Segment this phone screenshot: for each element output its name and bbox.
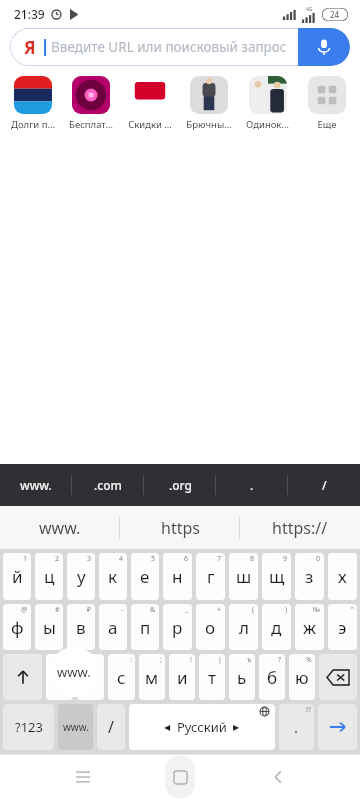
staticText: 2 <box>55 554 60 564</box>
button[interactable]: я <box>46 654 73 700</box>
button[interactable]: . <box>279 704 314 750</box>
button[interactable]: ш <box>229 553 258 600</box>
button[interactable]: б <box>259 654 285 700</box>
button[interactable]: Брючны… <box>179 74 238 133</box>
staticText: https:// <box>272 517 328 539</box>
staticText: Я <box>24 36 36 59</box>
button[interactable]: www. <box>0 464 72 506</box>
button[interactable]: и <box>169 654 195 700</box>
staticText: : <box>130 655 132 665</box>
button[interactable]: й <box>3 553 31 600</box>
button[interactable]: Back <box>254 754 302 800</box>
button[interactable]: ф <box>3 604 31 650</box>
staticText: / <box>108 716 114 738</box>
button[interactable]: Одинок… <box>238 74 297 133</box>
button[interactable]: Я <box>10 28 350 66</box>
staticText: 3 <box>87 554 92 564</box>
button[interactable]: Go <box>318 704 357 750</box>
button[interactable]: ж <box>295 604 324 650</box>
button[interactable]: п <box>131 604 159 650</box>
button[interactable]: Backspace <box>319 654 357 700</box>
button[interactable]: н <box>163 553 192 600</box>
button[interactable]: х <box>328 553 357 600</box>
button[interactable]: Voice search <box>298 28 350 66</box>
staticText: ₽ <box>87 605 92 615</box>
button[interactable]: щ <box>262 553 291 600</box>
button[interactable]: к <box>99 553 127 600</box>
staticText: л <box>239 616 249 639</box>
staticText: . <box>294 717 299 737</box>
button[interactable]: www. <box>0 506 120 549</box>
staticText: № <box>313 605 321 615</box>
button[interactable]: Shift <box>3 654 42 700</box>
button[interactable]: в <box>67 604 95 650</box>
staticText: ъ <box>247 655 252 665</box>
button[interactable]: Home <box>165 755 195 799</box>
button[interactable]: г <box>196 553 225 600</box>
button[interactable]: Еще <box>297 74 356 133</box>
staticText: в <box>76 616 86 639</box>
button[interactable]: ?123 <box>3 704 54 750</box>
staticText: ю <box>295 666 309 689</box>
staticText: е <box>140 565 150 588</box>
staticText: ы <box>43 616 56 639</box>
staticText: ц <box>44 565 55 588</box>
staticText: д <box>271 616 282 639</box>
staticText: www. <box>63 720 89 734</box>
staticText: .org <box>169 477 192 493</box>
other: Go <box>328 717 348 737</box>
staticText: ? <box>278 655 282 665</box>
button[interactable]: у <box>67 553 95 600</box>
staticText: @ <box>21 605 28 615</box>
staticText: !? <box>306 705 311 715</box>
button[interactable]: Recents <box>59 754 107 800</box>
button[interactable]: е <box>131 553 159 600</box>
staticText: б <box>267 666 278 689</box>
button[interactable]: ц <box>35 553 63 600</box>
button[interactable]: . <box>216 464 288 506</box>
button[interactable]: ю <box>289 654 315 700</box>
button[interactable]: д <box>262 604 291 650</box>
button[interactable]: Скидки … <box>120 74 179 133</box>
staticText: + <box>217 605 222 615</box>
staticText: ?123 <box>15 718 43 736</box>
button[interactable]: / <box>288 464 360 506</box>
button[interactable]: з <box>295 553 324 600</box>
staticText: ж <box>303 616 316 639</box>
button[interactable]: ы <box>35 604 63 650</box>
button[interactable]: а <box>99 604 127 650</box>
staticText: Долги п… <box>11 118 55 131</box>
staticText: щ <box>269 565 285 588</box>
staticText: з <box>305 565 314 588</box>
button[interactable]: Долги п… <box>4 74 62 133</box>
button[interactable]: ь <box>229 654 255 700</box>
staticText: я <box>55 666 65 689</box>
button[interactable]: ч <box>77 654 104 700</box>
button[interactable]: https:// <box>240 506 360 549</box>
staticText: | <box>218 655 222 665</box>
button[interactable]: э <box>328 604 357 650</box>
staticText: 0 <box>316 554 321 564</box>
staticText: о <box>205 616 216 639</box>
button[interactable]: .org <box>144 464 216 506</box>
staticText: ф <box>11 616 24 639</box>
button[interactable]: м <box>139 654 165 700</box>
staticText: / <box>322 477 327 493</box>
staticText: к <box>108 565 118 588</box>
button[interactable]: ◀ <box>129 704 275 750</box>
staticText: ч <box>85 666 96 689</box>
button[interactable]: / <box>97 704 125 750</box>
staticText: Одинок… <box>246 118 289 131</box>
button[interactable]: www. <box>58 704 93 750</box>
button[interactable]: т <box>199 654 225 700</box>
staticText: Русский <box>177 718 227 736</box>
button[interactable]: Бесплат… <box>62 74 120 133</box>
button[interactable]: л <box>229 604 258 650</box>
button[interactable]: р <box>163 604 192 650</box>
staticText: ◀ <box>164 723 171 732</box>
staticText: ; <box>160 655 162 665</box>
button[interactable]: с <box>108 654 135 700</box>
button[interactable]: .com <box>72 464 144 506</box>
button[interactable]: https <box>120 506 240 549</box>
button[interactable]: о <box>196 604 225 650</box>
